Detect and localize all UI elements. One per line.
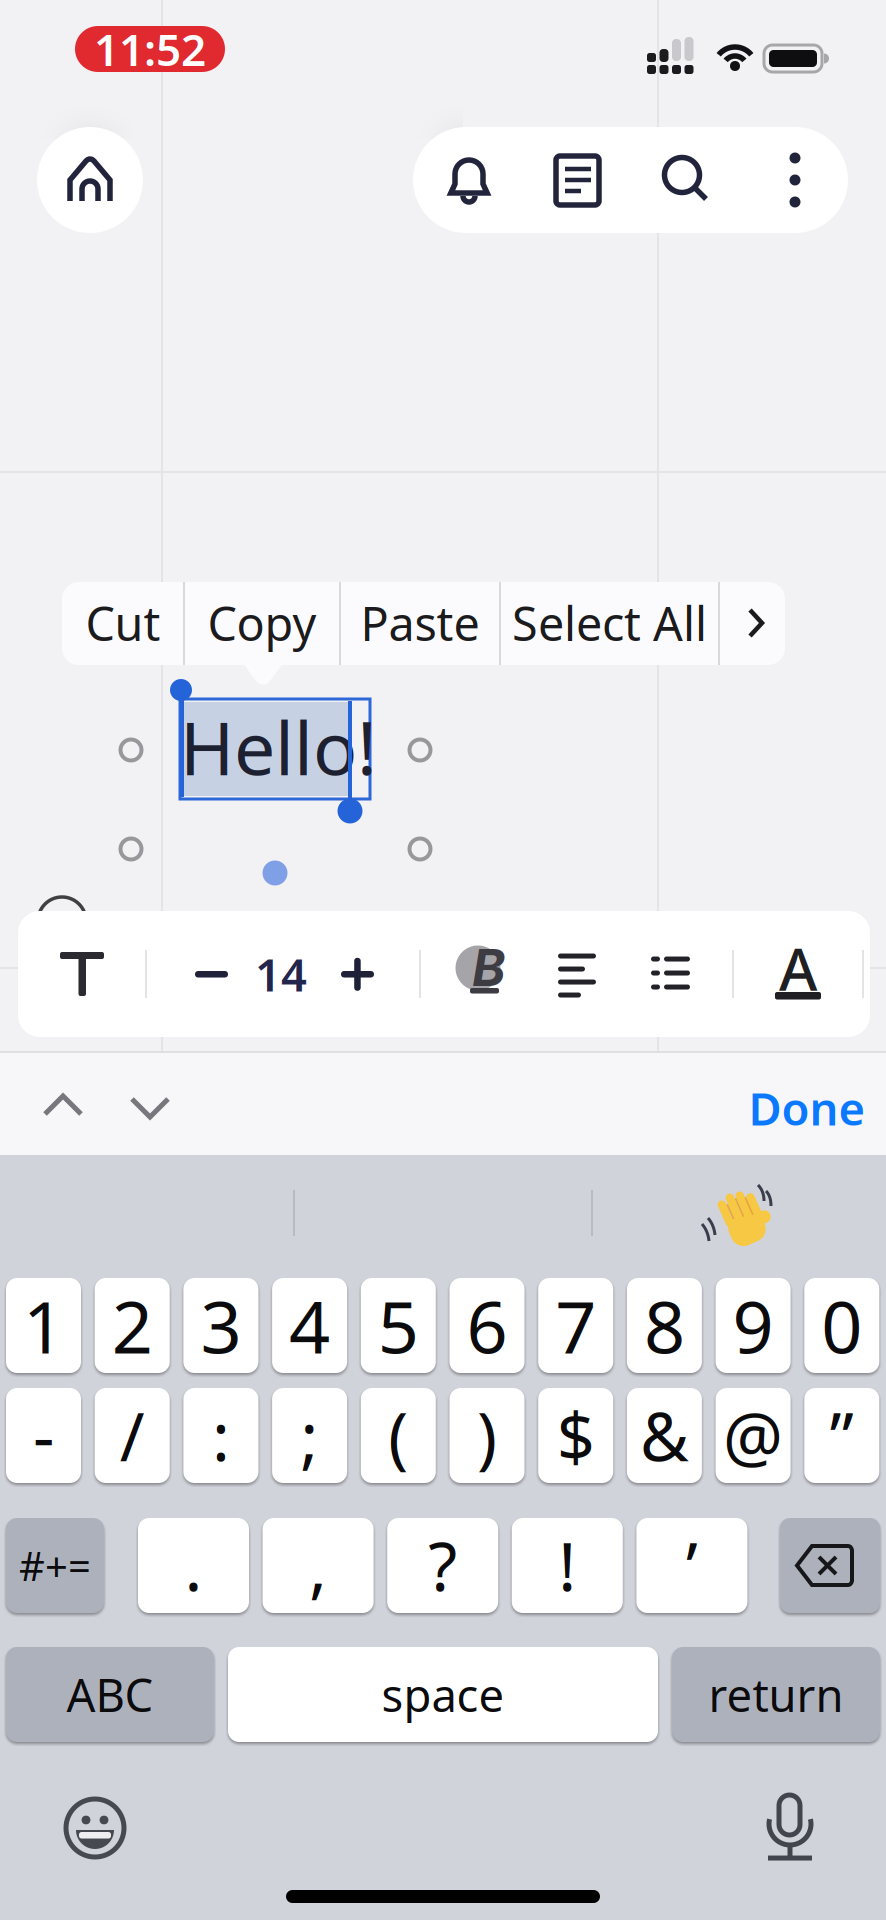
button[interactable]: Cut <box>0 0 122 44</box>
staticText: @ <box>723 1391 783 1480</box>
staticText: 9 <box>733 1278 774 1373</box>
button[interactable]: Dictation <box>0 0 886 1920</box>
staticText: 6 <box>466 1278 507 1373</box>
button[interactable]: return <box>0 0 208 95</box>
staticText: Copy <box>207 592 316 654</box>
staticText: return <box>708 1664 843 1725</box>
staticText: space <box>381 1664 504 1725</box>
button[interactable]: ABC <box>0 0 208 95</box>
button[interactable]: Select All <box>0 0 219 44</box>
staticText: Cut <box>85 592 160 654</box>
staticText: ? <box>428 1521 457 1610</box>
staticText: ; <box>301 1391 319 1480</box>
button[interactable]: Paste <box>0 0 160 44</box>
staticText: $ <box>557 1391 595 1480</box>
staticText: ABC <box>66 1664 153 1725</box>
button[interactable]: Notifications <box>0 0 886 1920</box>
button[interactable]: Text color <box>0 0 886 1920</box>
button[interactable]: Text style <box>0 0 886 1920</box>
staticText: #+= <box>19 1539 91 1592</box>
staticText: ’ <box>686 1521 698 1610</box>
staticText: 5 <box>378 1278 419 1373</box>
button[interactable]: Search <box>0 0 886 1920</box>
button[interactable]: More menu items <box>0 0 886 1920</box>
button[interactable]: Text alignment <box>0 0 886 1920</box>
button[interactable]: Increase font size <box>0 0 886 1920</box>
button[interactable]: Home <box>0 0 106 106</box>
staticText: A <box>779 929 817 1007</box>
button[interactable]: ’ <box>0 0 111 95</box>
staticText: ! <box>558 1521 576 1610</box>
button[interactable]: space <box>0 0 430 95</box>
button[interactable]: ? <box>0 0 111 95</box>
staticText: / <box>120 1391 145 1480</box>
staticText: 1 <box>23 1278 64 1373</box>
button[interactable]: Previous field <box>0 0 886 1920</box>
staticText: 11:52 <box>94 20 206 78</box>
button[interactable]: Done <box>0 0 170 46</box>
staticText: Done <box>748 1078 865 1138</box>
staticText: Hello! <box>180 698 377 795</box>
button[interactable]: #+= <box>0 0 98 95</box>
staticText: B <box>472 937 506 998</box>
staticText: 7 <box>555 1278 596 1373</box>
staticText: 8 <box>644 1278 685 1373</box>
button[interactable]: Recording time <box>0 0 150 46</box>
button[interactable]: Next field <box>0 0 886 1920</box>
staticText: 14 <box>255 944 307 1004</box>
staticText: ( <box>388 1391 408 1480</box>
button[interactable]: List <box>0 0 886 1920</box>
button[interactable]: Delete <box>0 0 100 95</box>
staticText: & <box>640 1391 689 1480</box>
staticText: . <box>184 1521 202 1610</box>
staticText: : <box>212 1391 230 1480</box>
button[interactable]: Emoji <box>0 0 886 1920</box>
button[interactable]: Notes <box>0 0 886 1920</box>
button[interactable]: Bold <box>0 0 886 1920</box>
button[interactable]: Decrease font size <box>0 0 886 1920</box>
staticText: 2 <box>112 1278 153 1373</box>
staticText: Paste <box>360 592 479 654</box>
staticText: , <box>309 1521 327 1610</box>
staticText: 0 <box>821 1278 862 1373</box>
button[interactable]: . <box>0 0 111 95</box>
staticText: ” <box>830 1391 854 1480</box>
staticText: ) <box>477 1391 497 1480</box>
button[interactable]: ! <box>0 0 111 95</box>
staticText: 4 <box>289 1278 330 1373</box>
staticText: Select All <box>512 592 707 654</box>
staticText: - <box>33 1391 54 1480</box>
button[interactable]: More options <box>0 0 886 1920</box>
button[interactable]: , <box>0 0 111 95</box>
staticText: 3 <box>200 1278 241 1373</box>
button[interactable]: Copy <box>0 0 156 44</box>
